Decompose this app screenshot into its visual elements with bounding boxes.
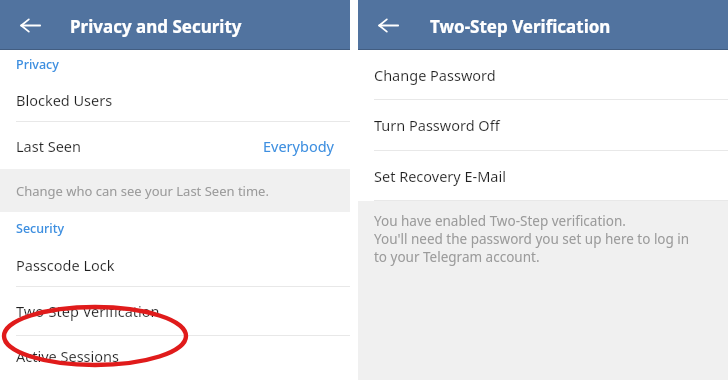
button[interactable]: Active Sessions	[0, 336, 350, 376]
staticText: You have enabled Two-Step verification.	[374, 212, 626, 230]
staticText: Set Recovery E-Mail	[374, 166, 506, 186]
button[interactable]: Passcode Lock	[0, 244, 350, 286]
button[interactable]: Set Recovery E-Mail	[358, 151, 728, 200]
staticText: Passcode Lock	[16, 255, 115, 275]
button[interactable]: Back	[15, 13, 45, 37]
staticText: Privacy	[16, 56, 59, 73]
button[interactable]: Turn Password Off	[358, 100, 728, 150]
staticText: Security	[16, 220, 65, 237]
staticText: Privacy and Security	[70, 15, 242, 38]
staticText: Change Password	[374, 65, 496, 85]
staticText: Two-Step Verification	[430, 15, 611, 38]
button[interactable]: Change Password	[358, 50, 728, 99]
staticText: Two-Step Verification	[16, 301, 160, 321]
staticText: to your Telegram account.	[374, 248, 540, 266]
staticText: Everybody	[263, 136, 334, 156]
staticText: You'll need the password you set up here…	[374, 230, 690, 248]
staticText: Change who can see your Last Seen time.	[16, 182, 269, 200]
staticText: Turn Password Off	[374, 115, 500, 135]
staticText: Blocked Users	[16, 90, 113, 110]
button[interactable]: Back	[373, 13, 403, 37]
staticText: Active Sessions	[16, 346, 119, 366]
button[interactable]: Last Seen	[0, 122, 350, 169]
button[interactable]: Two-Step Verification	[0, 287, 350, 335]
button[interactable]: Blocked Users	[0, 79, 350, 121]
staticText: Last Seen	[16, 136, 81, 156]
